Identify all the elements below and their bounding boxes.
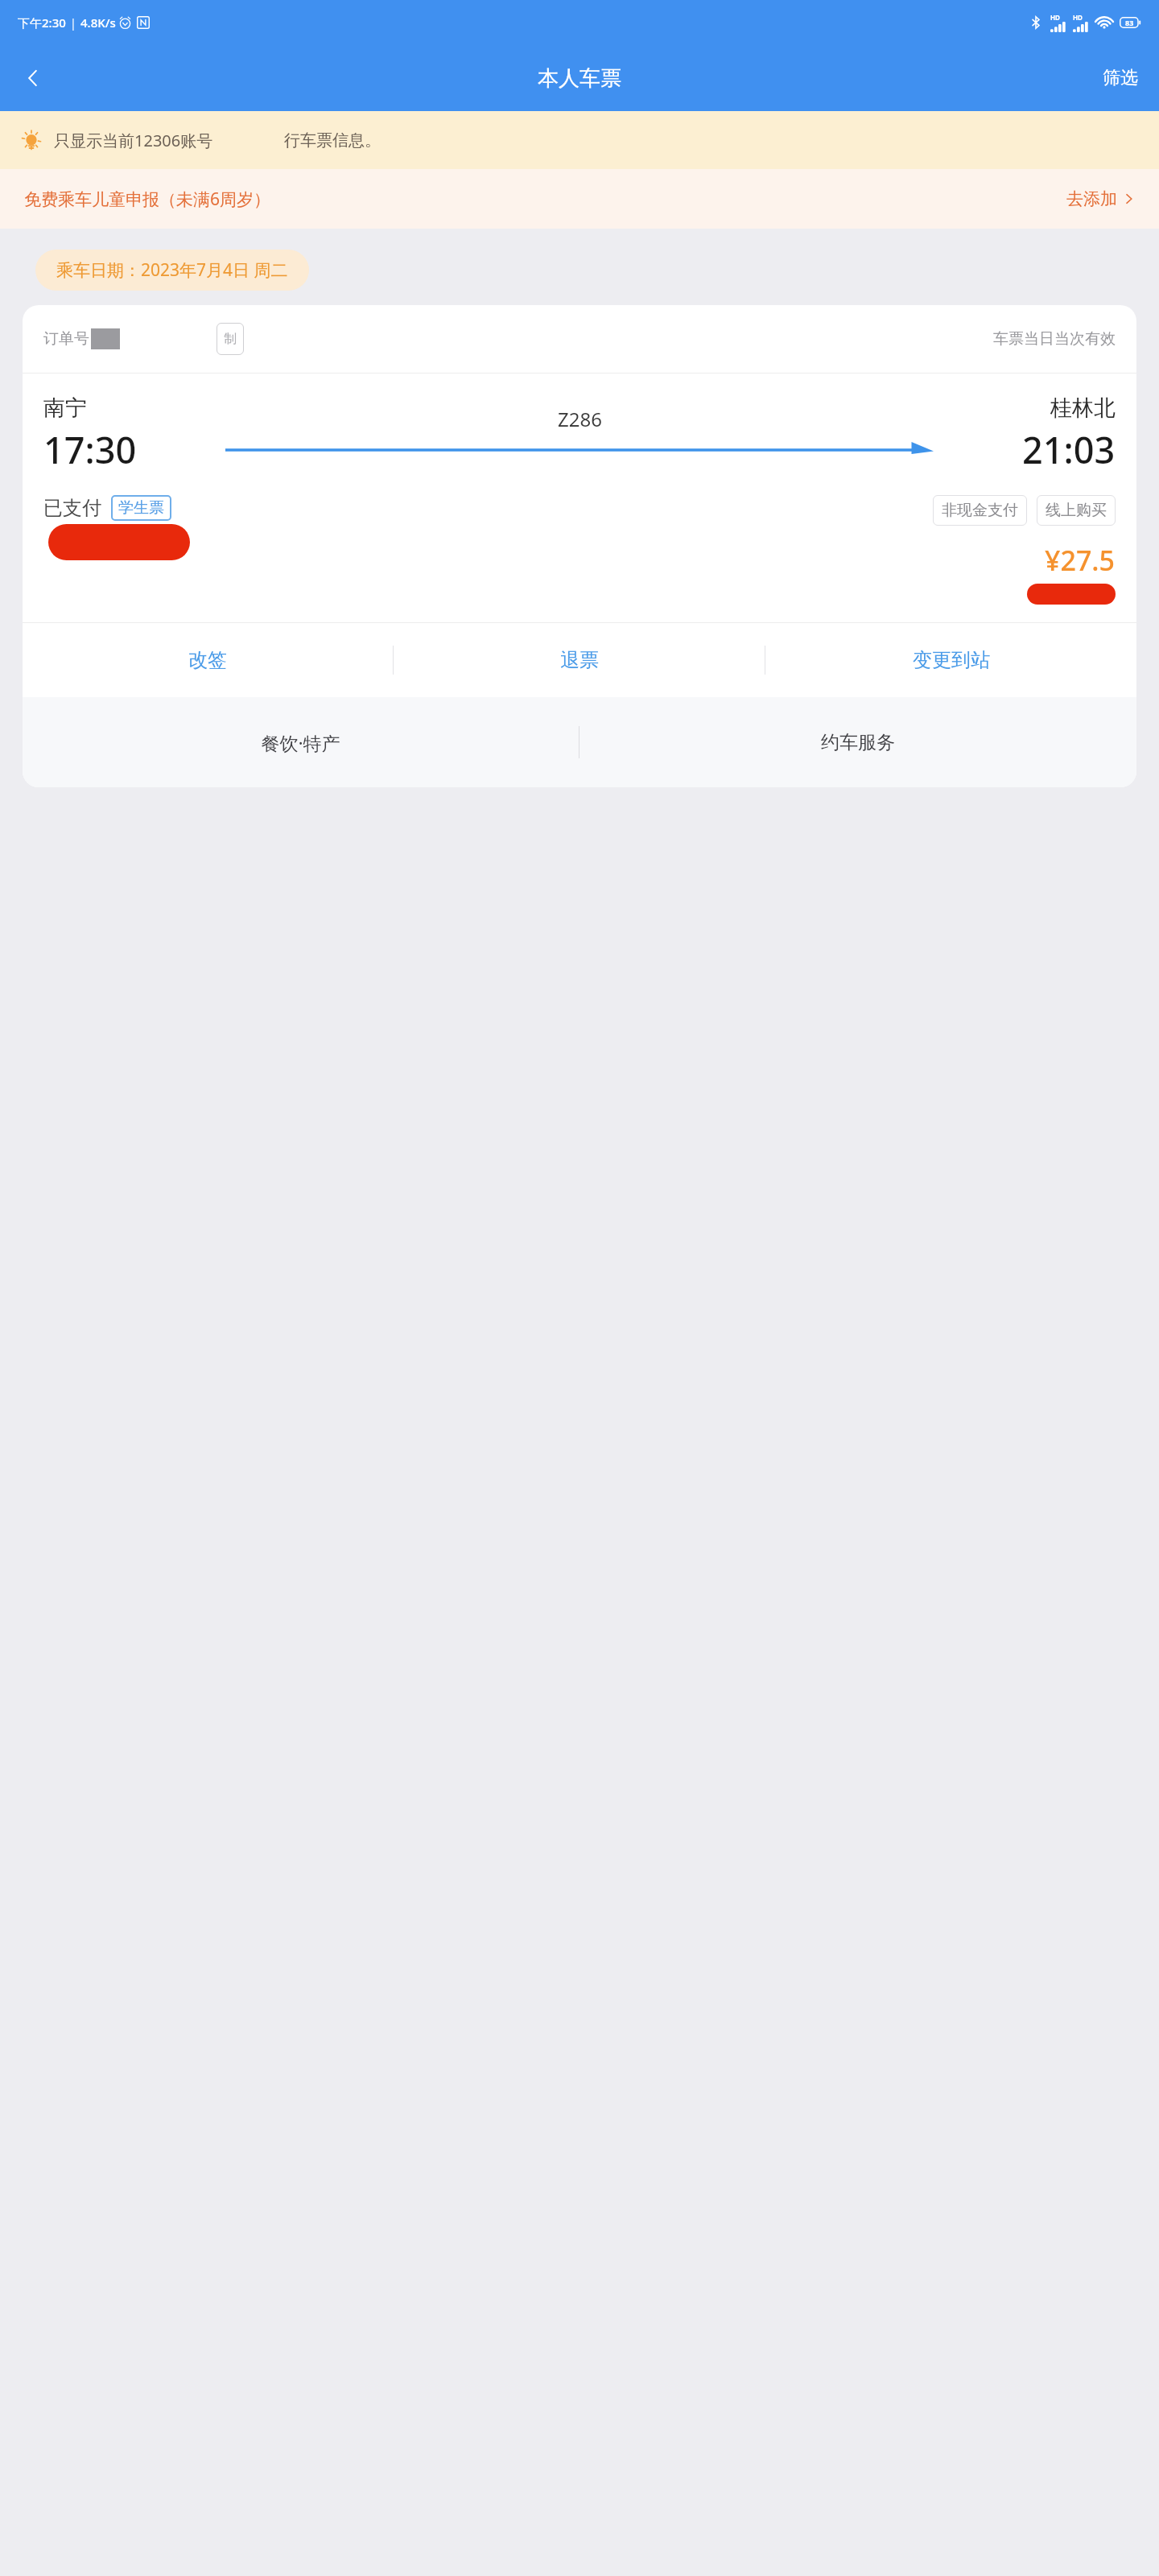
button[interactable]: 改签 xyxy=(23,623,393,697)
button[interactable]: 筛选 xyxy=(1082,56,1159,101)
staticText: | xyxy=(70,15,76,31)
staticText: 订单号 xyxy=(43,329,89,349)
staticText: 已支付 xyxy=(43,496,101,520)
button[interactable]: 免费乘车儿童申报（未满6周岁） xyxy=(0,169,1159,229)
button[interactable]: 订单号 xyxy=(23,305,1136,787)
staticText: 下午2:30 xyxy=(18,14,66,31)
button[interactable]: 乘车日期：2023年7月4日 周二 xyxy=(35,250,309,291)
staticText: ¥27.5 xyxy=(1045,542,1116,579)
staticText: 车票当日当次有效 xyxy=(993,329,1116,349)
staticText: 餐饮·特产 xyxy=(261,730,340,755)
staticText: 筛选 xyxy=(1103,67,1138,89)
staticText: 非现金支付 xyxy=(942,501,1018,520)
button[interactable]: 返回 xyxy=(8,53,58,103)
staticText: 变更到站 xyxy=(913,648,990,672)
staticText: 改签 xyxy=(188,648,227,672)
staticText: HD xyxy=(1050,13,1060,22)
staticText: 学生票 xyxy=(118,498,164,518)
staticText: 退票 xyxy=(560,648,599,672)
staticText: Z286 xyxy=(558,406,602,432)
staticText: 乘车日期：2023年7月4日 周二 xyxy=(56,258,288,282)
staticText: 线上购买 xyxy=(1046,501,1107,520)
button[interactable]: 变更到站 xyxy=(765,623,1136,697)
staticText: 只显示当前12306账号 xyxy=(54,130,213,151)
staticText: HD xyxy=(1073,13,1083,22)
staticText: 去添加 xyxy=(1066,188,1117,209)
staticText: 21:03 xyxy=(1022,425,1116,474)
staticText: 免费乘车儿童申报（未满6周岁） xyxy=(24,188,271,211)
staticText: 本人车票 xyxy=(538,65,621,92)
button[interactable]: 餐饮·特产 xyxy=(23,697,579,787)
staticText: 17:30 xyxy=(43,425,137,474)
button[interactable]: 约车服务 xyxy=(579,697,1136,787)
staticText: 4.8K/s xyxy=(80,14,116,31)
staticText: 行车票信息。 xyxy=(284,130,381,151)
staticText: 83 xyxy=(1125,18,1134,27)
staticText: 约车服务 xyxy=(821,731,895,754)
staticText: 南宁 xyxy=(43,394,87,422)
staticText: 制 xyxy=(224,331,237,347)
button[interactable]: 退票 xyxy=(394,623,765,697)
staticText: 桂林北 xyxy=(1050,394,1116,422)
